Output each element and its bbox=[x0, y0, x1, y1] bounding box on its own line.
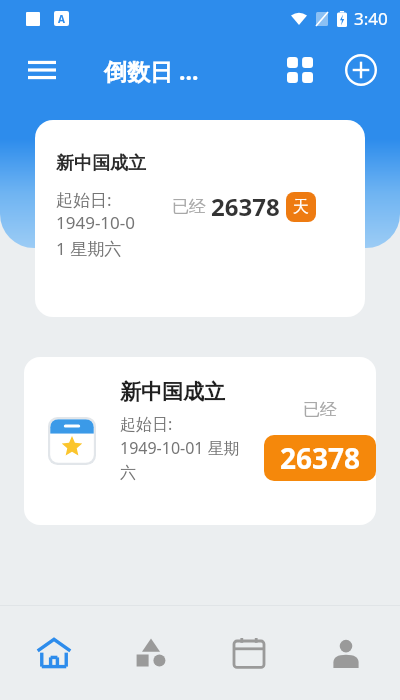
button[interactable]: Home bbox=[10, 617, 98, 689]
staticText: 3:40 bbox=[354, 7, 388, 30]
staticText: 起始日: bbox=[120, 413, 173, 435]
staticText: 1949-10-0 bbox=[56, 211, 136, 234]
button[interactable]: Profile bbox=[302, 617, 390, 689]
staticText: 新中国成立 bbox=[56, 152, 146, 175]
staticText: 倒数日 ... bbox=[104, 55, 199, 86]
staticText: 起始日: bbox=[56, 188, 112, 211]
button[interactable]: Menu bbox=[20, 48, 64, 92]
button[interactable]: Grid view bbox=[278, 48, 322, 92]
staticText: 26378 bbox=[280, 439, 361, 477]
staticText: 已经 bbox=[172, 196, 206, 217]
staticText: 已经 bbox=[303, 399, 337, 420]
button[interactable]: 新中国成立 bbox=[24, 357, 376, 525]
button[interactable]: 新中国成立 bbox=[35, 120, 365, 317]
staticText: 天 bbox=[293, 197, 309, 217]
staticText: 1 星期六 bbox=[56, 237, 122, 260]
staticText: A bbox=[58, 12, 65, 26]
staticText: 26378 bbox=[211, 190, 280, 223]
staticText: 六 bbox=[120, 463, 136, 483]
button[interactable]: Categories bbox=[107, 617, 195, 689]
button[interactable]: Calendar bbox=[205, 617, 293, 689]
button[interactable]: Add bbox=[338, 47, 384, 93]
staticText: 新中国成立 bbox=[120, 379, 225, 405]
staticText: 1949-10-01 星期 bbox=[120, 437, 240, 459]
